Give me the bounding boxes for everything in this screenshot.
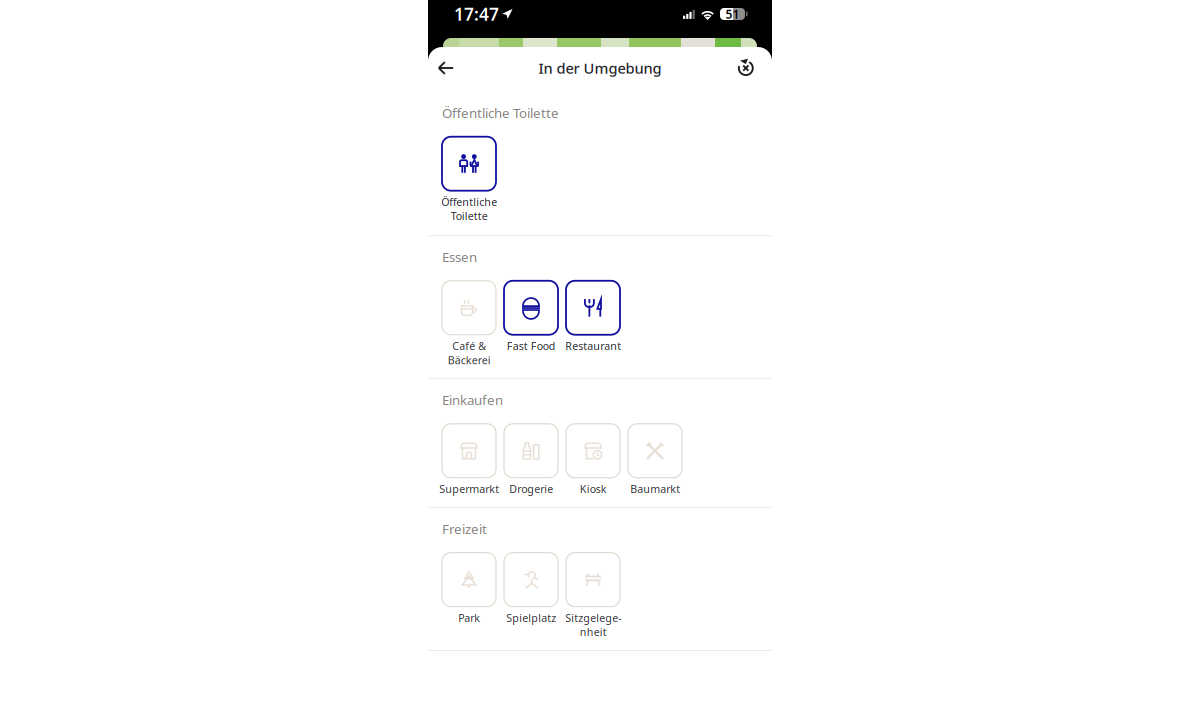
button[interactable]: Sitzgelegenheit (562, 553, 624, 639)
staticText: Einkaufen (442, 391, 503, 409)
staticText: Sitzgelegenheit (565, 611, 621, 639)
button[interactable]: Restaurant (562, 281, 624, 367)
button[interactable]: Kiosk (562, 424, 624, 496)
staticText: Kiosk (579, 482, 606, 496)
button[interactable]: Öffentliche Toilette (438, 137, 500, 223)
staticText: In der Umgebung (538, 58, 661, 78)
button[interactable]: Baumarkt (624, 424, 686, 496)
button[interactable]: Supermarkt (438, 424, 500, 496)
staticText: 17:47 (454, 2, 499, 25)
staticText: Café & Bäckerei (447, 339, 490, 367)
staticText: Spielplatz (506, 611, 556, 625)
staticText: Fast Food (506, 339, 555, 353)
staticText: Baumarkt (630, 482, 680, 496)
button[interactable]: Reset selection (733, 50, 766, 85)
staticText: Essen (442, 248, 477, 266)
button[interactable]: Café & Bäckerei (438, 281, 500, 367)
staticText: Freizeit (442, 520, 487, 538)
staticText: Öffentliche Toilette (441, 195, 497, 223)
staticText: Drogerie (509, 482, 553, 496)
button[interactable]: Back (434, 51, 464, 84)
button[interactable]: Spielplatz (500, 553, 562, 639)
button[interactable]: Drogerie (500, 424, 562, 496)
staticText: Restaurant (565, 339, 621, 353)
button[interactable]: Park (438, 553, 500, 639)
staticText: 51 (725, 6, 739, 22)
button[interactable]: Fast Food (500, 281, 562, 367)
staticText: Supermarkt (439, 482, 499, 496)
staticText: Öffentliche Toilette (442, 104, 559, 122)
staticText: Park (458, 611, 480, 625)
